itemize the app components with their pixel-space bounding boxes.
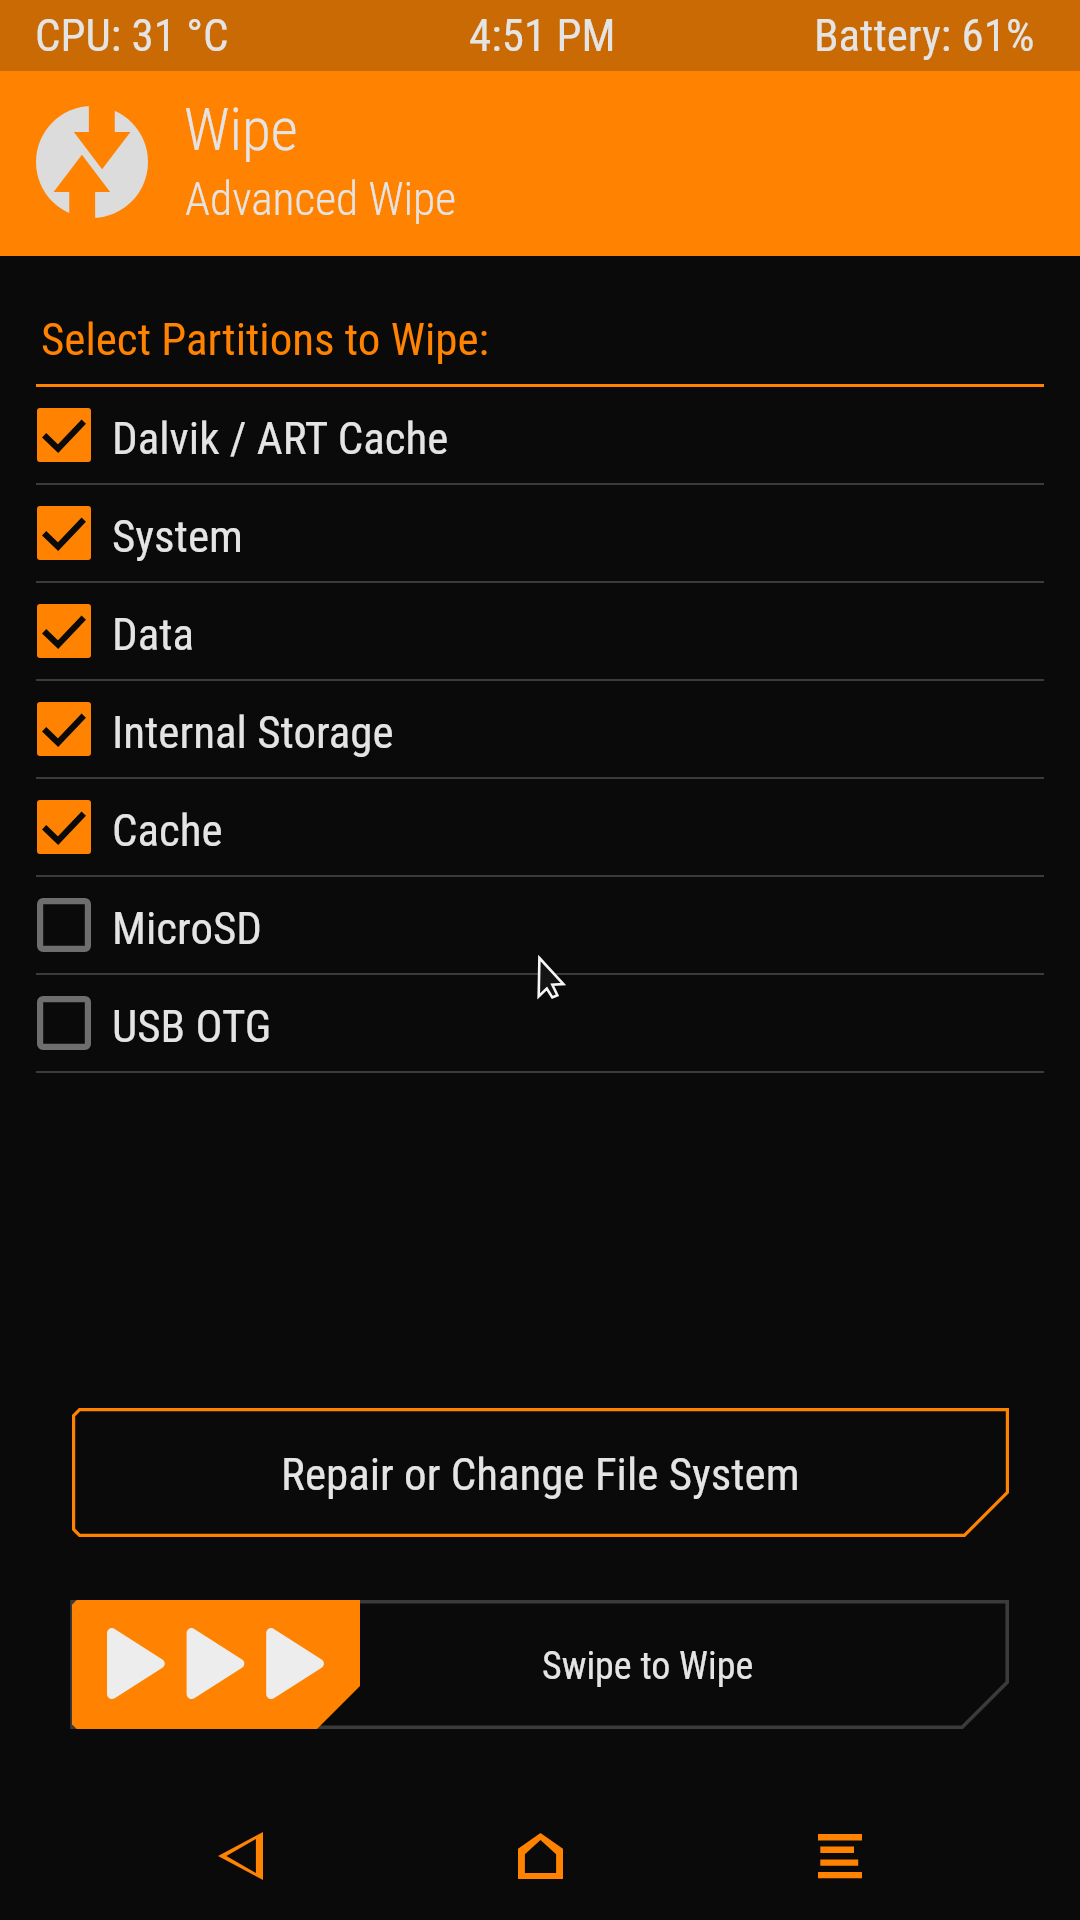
staticText: Cache <box>112 804 223 857</box>
button[interactable]: Internal Storage <box>0 681 1080 779</box>
staticText: USB OTG <box>112 1000 272 1053</box>
staticText: Advanced Wipe <box>185 173 457 226</box>
staticText: Battery: 61% <box>814 9 1035 62</box>
staticText: 4:51 PM <box>469 9 616 62</box>
button[interactable]: Dalvik / ART Cache <box>0 387 1080 485</box>
staticText: Swipe to Wipe <box>542 1644 754 1689</box>
staticText: Internal Storage <box>112 706 394 759</box>
button[interactable]: Cache <box>0 779 1080 877</box>
button[interactable]: Menu <box>690 1791 990 1920</box>
staticText: Data <box>112 608 195 661</box>
button[interactable]: Swipe to Wipe <box>72 1600 1009 1729</box>
staticText: Select Partitions to Wipe: <box>41 313 490 366</box>
button[interactable]: Home <box>390 1791 690 1920</box>
button[interactable]: Data <box>0 583 1080 681</box>
staticText: MicroSD <box>112 902 262 955</box>
staticText: Repair or Change File System <box>281 1448 800 1501</box>
staticText: Wipe <box>184 95 298 164</box>
button[interactable]: MicroSD <box>0 877 1080 975</box>
staticText: System <box>112 510 243 563</box>
staticText: CPU: 31 °C <box>35 9 229 62</box>
button[interactable]: System <box>0 485 1080 583</box>
button[interactable]: Back <box>90 1791 390 1920</box>
button[interactable]: Repair or Change File System <box>72 1408 1009 1537</box>
staticText: Dalvik / ART Cache <box>112 412 449 465</box>
button[interactable]: USB OTG <box>0 975 1080 1073</box>
